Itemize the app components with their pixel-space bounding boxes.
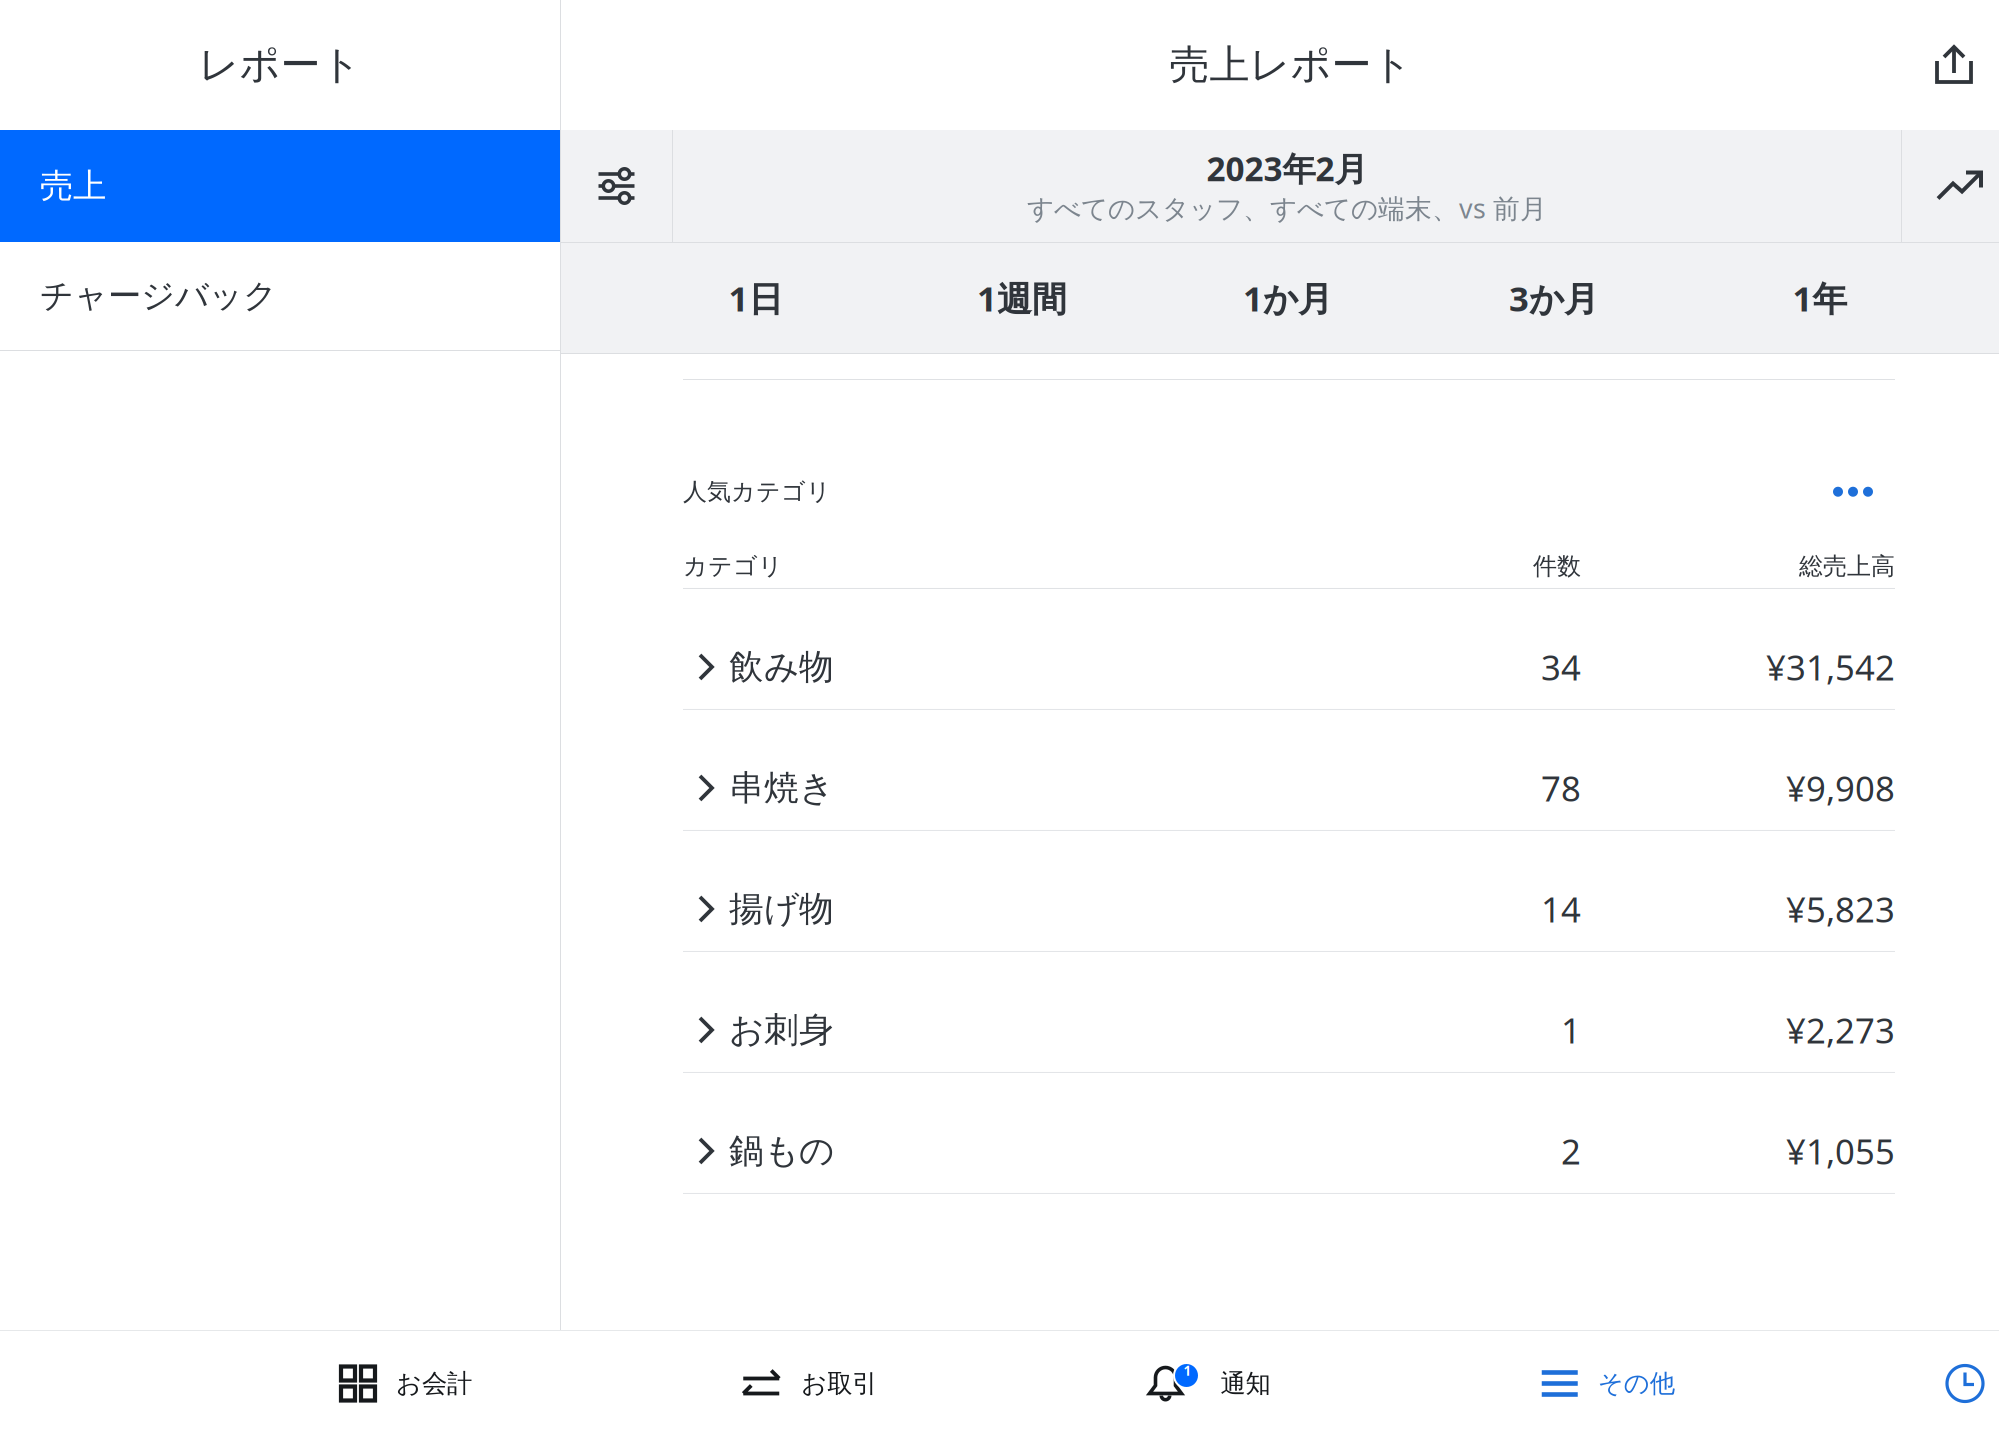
button[interactable]: 飲み物 bbox=[683, 589, 1895, 710]
staticText: 揚げ物 bbox=[729, 888, 834, 930]
staticText: ¥31,542 bbox=[1766, 644, 1895, 690]
staticText: その他 bbox=[1598, 1368, 1675, 1399]
button[interactable]: 1日 bbox=[623, 244, 889, 352]
button[interactable]: 1か月 bbox=[1155, 244, 1421, 352]
staticText: 2023年2月 bbox=[1206, 146, 1367, 190]
staticText: カテゴリ bbox=[683, 551, 783, 581]
staticText: お会計 bbox=[396, 1368, 472, 1399]
staticText: 1か月 bbox=[1243, 275, 1333, 321]
button[interactable]: 共有 bbox=[1909, 45, 1999, 85]
staticText: 総売上高 bbox=[1799, 551, 1895, 581]
button[interactable]: トレンド bbox=[1902, 130, 1999, 242]
staticText: 1 bbox=[1183, 1362, 1191, 1379]
staticText: 1日 bbox=[728, 275, 783, 321]
button[interactable]: チャージバック bbox=[0, 242, 560, 350]
staticText: 1年 bbox=[1792, 275, 1847, 321]
staticText: ¥5,823 bbox=[1786, 886, 1895, 932]
button[interactable]: 1週間 bbox=[889, 244, 1155, 352]
staticText: 2 bbox=[1561, 1128, 1581, 1174]
staticText: 14 bbox=[1541, 886, 1581, 932]
staticText: 鍋もの bbox=[729, 1130, 834, 1172]
button[interactable]: お会計 bbox=[339, 1331, 472, 1436]
staticText: 飲み物 bbox=[729, 646, 834, 688]
staticText: 売上 bbox=[40, 165, 106, 206]
staticText: お刺身 bbox=[729, 1009, 834, 1051]
button[interactable]: その他 bbox=[1541, 1331, 1675, 1436]
button[interactable]: 1年 bbox=[1687, 244, 1953, 352]
staticText: お取引 bbox=[801, 1368, 877, 1399]
staticText: チャージバック bbox=[40, 275, 277, 316]
staticText: 3か月 bbox=[1509, 275, 1599, 321]
staticText: 件数 bbox=[1533, 551, 1581, 581]
button[interactable]: お刺身 bbox=[683, 952, 1895, 1073]
staticText: レポート bbox=[198, 40, 361, 89]
staticText: ¥9,908 bbox=[1786, 765, 1895, 811]
button[interactable]: 揚げ物 bbox=[683, 831, 1895, 952]
staticText: ¥1,055 bbox=[1786, 1128, 1895, 1174]
button[interactable]: 売上 bbox=[0, 130, 560, 242]
staticText: 1 bbox=[1561, 1007, 1581, 1053]
staticText: 串焼き bbox=[729, 767, 834, 809]
staticText: ¥2,273 bbox=[1786, 1007, 1895, 1053]
button[interactable]: 1 bbox=[1147, 1331, 1270, 1436]
button[interactable]: 履歴 bbox=[1945, 1363, 1999, 1403]
button[interactable]: 鍋もの bbox=[683, 1073, 1895, 1194]
staticText: 売上レポート bbox=[1169, 40, 1412, 89]
staticText: 34 bbox=[1541, 644, 1581, 690]
staticText: すべてのスタッフ、すべての端末、vs 前月 bbox=[1027, 190, 1547, 226]
staticText: 78 bbox=[1541, 765, 1581, 811]
button[interactable]: フィルタ bbox=[561, 130, 672, 242]
staticText: 通知 bbox=[1220, 1368, 1270, 1399]
button[interactable]: その他のオプション bbox=[1833, 486, 1895, 498]
staticText: 人気カテゴリ bbox=[683, 477, 831, 506]
staticText: 1週間 bbox=[977, 275, 1067, 321]
button[interactable]: 串焼き bbox=[683, 710, 1895, 831]
button[interactable]: お取引 bbox=[742, 1331, 877, 1436]
button[interactable]: 3か月 bbox=[1421, 244, 1687, 352]
